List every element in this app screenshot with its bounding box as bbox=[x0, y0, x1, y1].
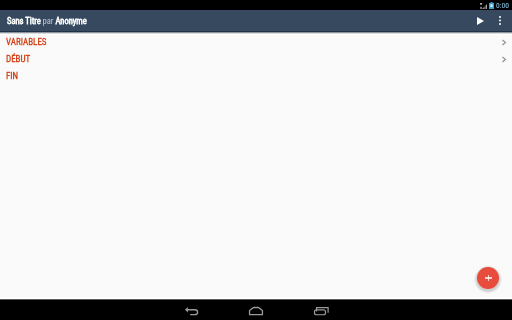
button[interactable]: Home bbox=[224, 302, 288, 320]
button[interactable]: Play bbox=[469, 10, 491, 31]
staticText: FIN bbox=[6, 71, 19, 82]
staticText: Sans Titre par Anonyme bbox=[7, 16, 87, 26]
button[interactable]: More options bbox=[491, 10, 509, 31]
button[interactable]: FIN bbox=[0, 68, 512, 85]
staticText: VARIABLES bbox=[6, 37, 47, 48]
staticText: DÉBUT bbox=[6, 54, 31, 65]
button[interactable]: DÉBUT bbox=[0, 51, 512, 68]
button[interactable]: VARIABLES bbox=[0, 34, 512, 51]
button[interactable]: Recents bbox=[289, 302, 353, 320]
staticText: 0:00 bbox=[496, 1, 509, 10]
button[interactable]: Add bbox=[477, 267, 499, 289]
button[interactable]: Back bbox=[159, 302, 223, 320]
